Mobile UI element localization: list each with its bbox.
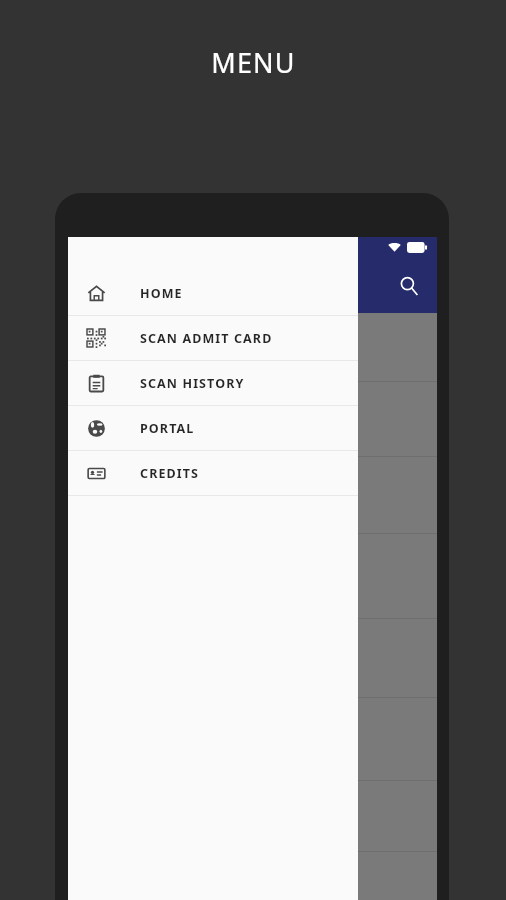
staticText: PORTAL — [140, 420, 195, 437]
staticText: SCAN HISTORY — [140, 375, 245, 392]
button[interactable]: Search — [389, 266, 429, 306]
staticText: HOME — [140, 285, 183, 302]
button[interactable]: Evening Check — [68, 457, 437, 533]
staticText: Afternoon Duty — [84, 396, 200, 418]
staticText: CREDITS — [140, 465, 200, 482]
button[interactable]: PORTAL — [68, 406, 358, 450]
staticText: 1:15 PM — [84, 425, 133, 443]
staticText: Evening Check — [84, 484, 194, 506]
button[interactable]: Night Patrol — [68, 534, 437, 618]
staticText: Morning Shift — [84, 324, 187, 346]
staticText: 9:30 AM — [84, 353, 134, 371]
button[interactable]: Afternoon Duty — [68, 382, 437, 456]
button[interactable]: CREDITS — [68, 451, 358, 495]
button[interactable]: HOME — [68, 271, 358, 315]
staticText: MENU — [211, 44, 296, 81]
button[interactable]: SCAN ADMIT CARD — [68, 316, 358, 360]
button[interactable]: SCAN HISTORY — [68, 361, 358, 405]
button[interactable]: Weekend Log — [68, 619, 437, 697]
button[interactable]: Exam Hall (Officer) — [68, 698, 437, 780]
staticText: SCAN ADMIT CARD — [140, 330, 273, 347]
button[interactable]: Collect Lists — [68, 781, 437, 851]
button[interactable]: Morning Shift — [68, 313, 437, 381]
